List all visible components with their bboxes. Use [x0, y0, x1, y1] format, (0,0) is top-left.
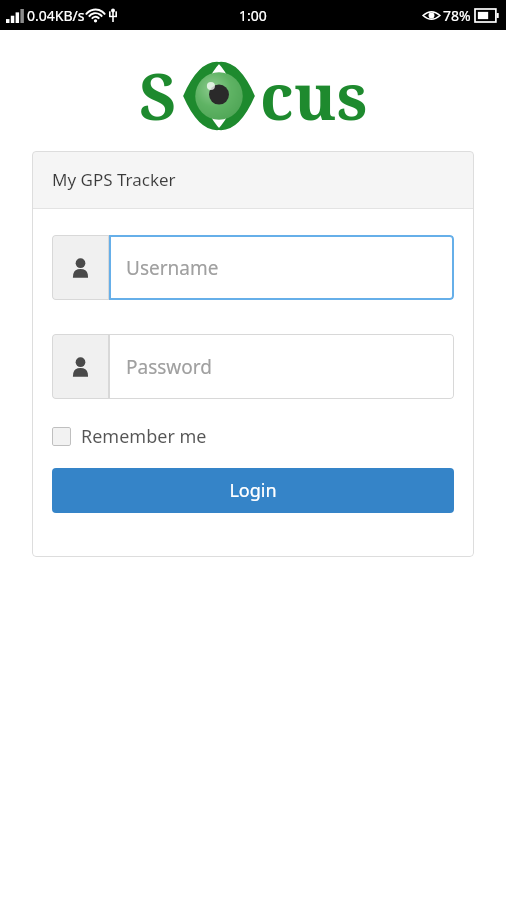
staticText: 1:00 [239, 6, 267, 25]
staticText: cus [260, 52, 368, 139]
staticText: Password [126, 354, 212, 380]
button[interactable]: Username [52, 235, 454, 300]
button[interactable]: Password [52, 334, 454, 399]
staticText: 78% [443, 6, 471, 25]
staticText: Remember me [81, 424, 207, 449]
staticText: Login [229, 478, 277, 503]
button[interactable]: Remember me [52, 424, 207, 449]
staticText: My GPS Tracker [52, 168, 176, 191]
staticText: S [139, 52, 177, 139]
staticText: 0.04KB/s [27, 6, 85, 25]
button[interactable]: Login [52, 468, 454, 513]
staticText: Username [126, 255, 219, 281]
